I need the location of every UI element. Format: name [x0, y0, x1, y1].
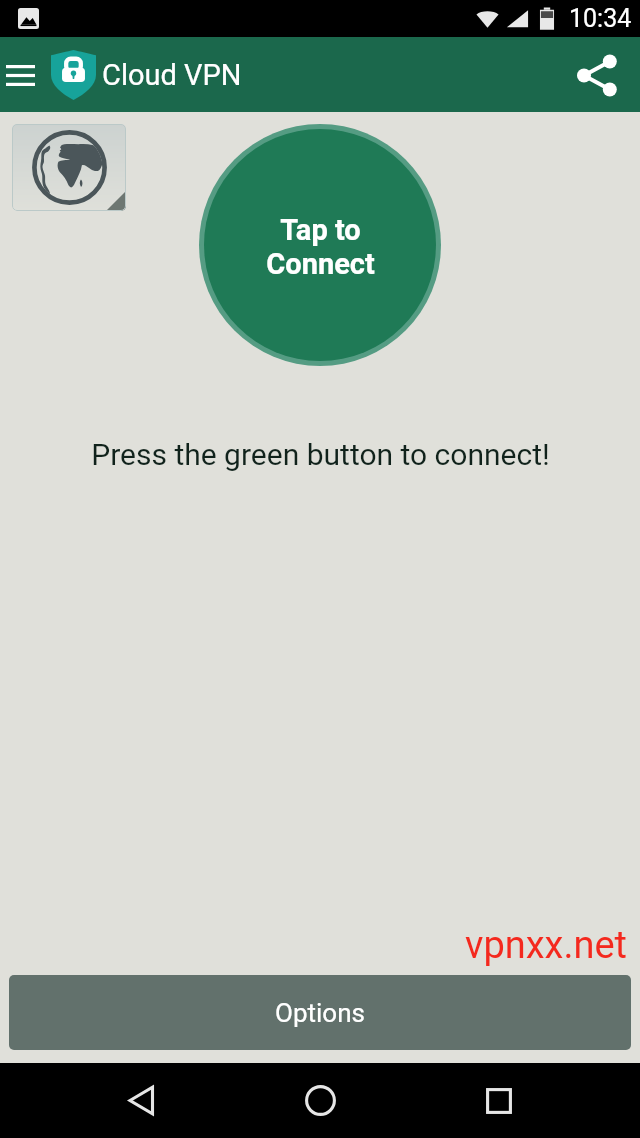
- button[interactable]: Recents: [461, 1063, 536, 1138]
- button[interactable]: Share: [563, 41, 631, 109]
- button[interactable]: Back: [104, 1063, 179, 1138]
- button[interactable]: Menu: [0, 44, 40, 106]
- button[interactable]: Home: [283, 1063, 358, 1138]
- staticText: Tap to Connect: [266, 213, 375, 281]
- button[interactable]: Tap to Connect: [204, 129, 436, 361]
- staticText: vpnxx.net: [465, 923, 628, 968]
- staticText: Press the green button to connect!: [91, 437, 550, 472]
- button[interactable]: Options: [9, 975, 631, 1050]
- staticText: Cloud VPN: [102, 58, 242, 92]
- button[interactable]: Select server: [12, 124, 126, 211]
- staticText: 10:34: [569, 4, 632, 33]
- staticText: Options: [275, 998, 365, 1028]
